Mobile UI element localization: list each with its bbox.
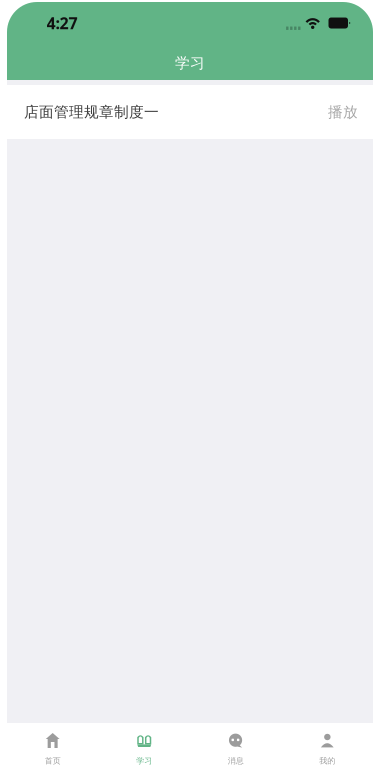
staticText: 消息 [228, 756, 244, 766]
staticText: 我的 [319, 756, 335, 766]
button[interactable]: 店面管理规章制度一 [7, 85, 373, 139]
button[interactable]: 消息 [190, 723, 281, 778]
button[interactable]: 学习 [98, 723, 190, 778]
staticText: 首页 [45, 756, 61, 766]
button[interactable]: 首页 [7, 723, 98, 778]
staticText: 播放 [328, 103, 358, 121]
staticText: 店面管理规章制度一 [24, 103, 159, 121]
staticText: 4:27 [46, 12, 77, 34]
staticText: 学习 [136, 756, 152, 766]
staticText: 学习 [175, 54, 205, 72]
button[interactable]: 我的 [281, 723, 373, 778]
